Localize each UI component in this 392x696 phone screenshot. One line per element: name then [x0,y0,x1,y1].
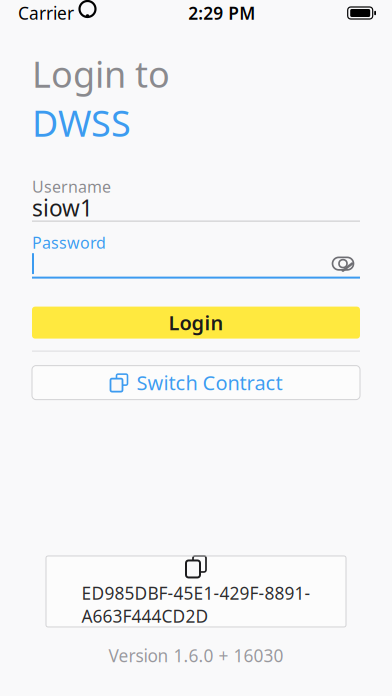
staticText: Username [32,176,111,197]
button[interactable]: Login [32,307,360,339]
staticText: 2:29 PM [188,1,255,24]
staticText: Login [168,309,223,336]
staticText: Switch Contract [136,369,282,396]
button[interactable]: Switch Contract [32,366,360,400]
staticText: Password [32,232,106,253]
staticText: Version 1.6.0 + 16030 [108,644,283,667]
staticText: ED985DBF-45E1-429F-8891-A663F444CD2D [81,581,310,627]
staticText: Carrier [18,1,74,24]
staticText: siow1 [32,193,93,223]
staticText: DWSS [32,99,131,147]
button[interactable]: Copy device identifier [46,556,346,627]
staticText: Login to [32,50,170,98]
button[interactable]: Show password [326,251,360,277]
